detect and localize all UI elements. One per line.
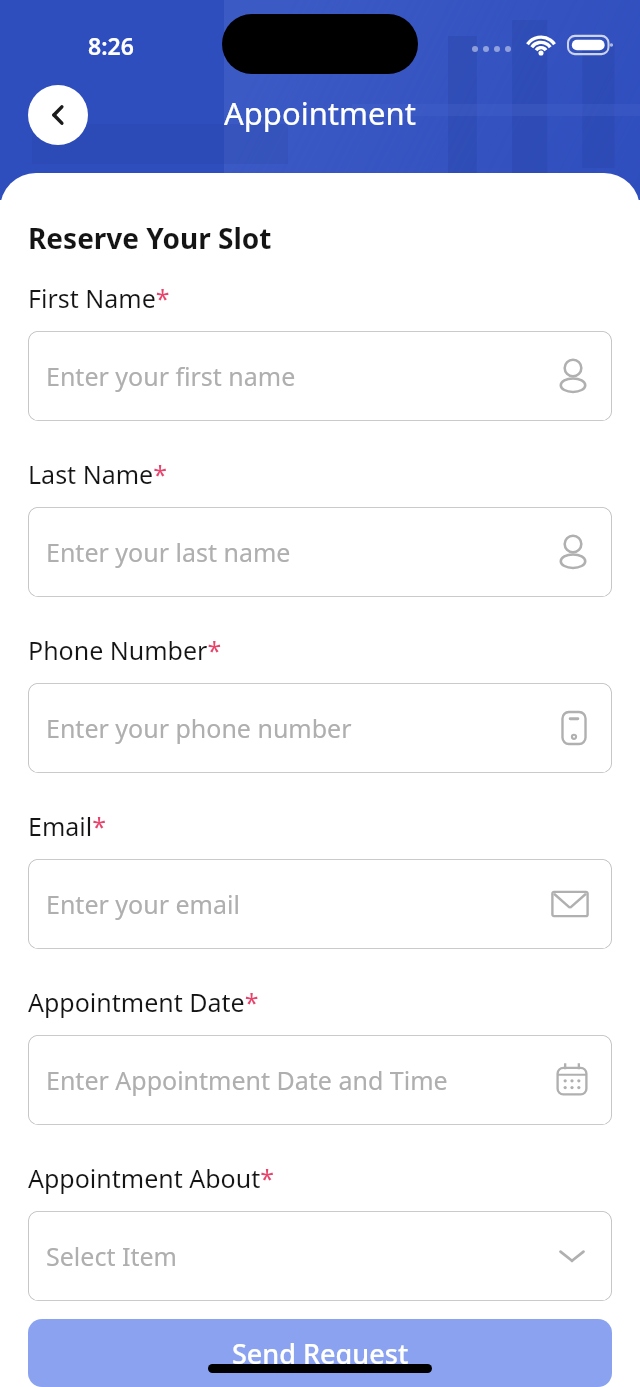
staticText: Enter your first name (46, 359, 556, 393)
staticText: Enter your phone number (46, 711, 558, 745)
staticText: Enter your email (46, 887, 550, 921)
button[interactable]: Back (28, 85, 88, 145)
staticText: Appointment (224, 92, 416, 134)
button[interactable]: Enter Appointment Date and Time (28, 1035, 612, 1125)
button[interactable]: Select Item (28, 1211, 612, 1301)
staticText: Last Name* (28, 457, 167, 491)
staticText: Email* (28, 809, 106, 843)
button[interactable]: Send Request (28, 1319, 612, 1387)
button[interactable]: Enter your last name (28, 507, 612, 597)
staticText: Select Item (46, 1239, 554, 1273)
staticText: Send Request (232, 1335, 409, 1372)
button[interactable]: Enter your phone number (28, 683, 612, 773)
staticText: Appointment About* (28, 1161, 274, 1195)
button[interactable]: Enter your email (28, 859, 612, 949)
staticText: First Name* (28, 281, 170, 315)
staticText: Appointment Date* (28, 985, 259, 1019)
staticText: Enter your last name (46, 535, 556, 569)
staticText: Enter Appointment Date and Time (46, 1063, 554, 1097)
staticText: Reserve Your Slot (28, 219, 272, 257)
button[interactable]: Enter your first name (28, 331, 612, 421)
staticText: 8:26 (88, 30, 134, 61)
staticText: Phone Number* (28, 633, 222, 667)
